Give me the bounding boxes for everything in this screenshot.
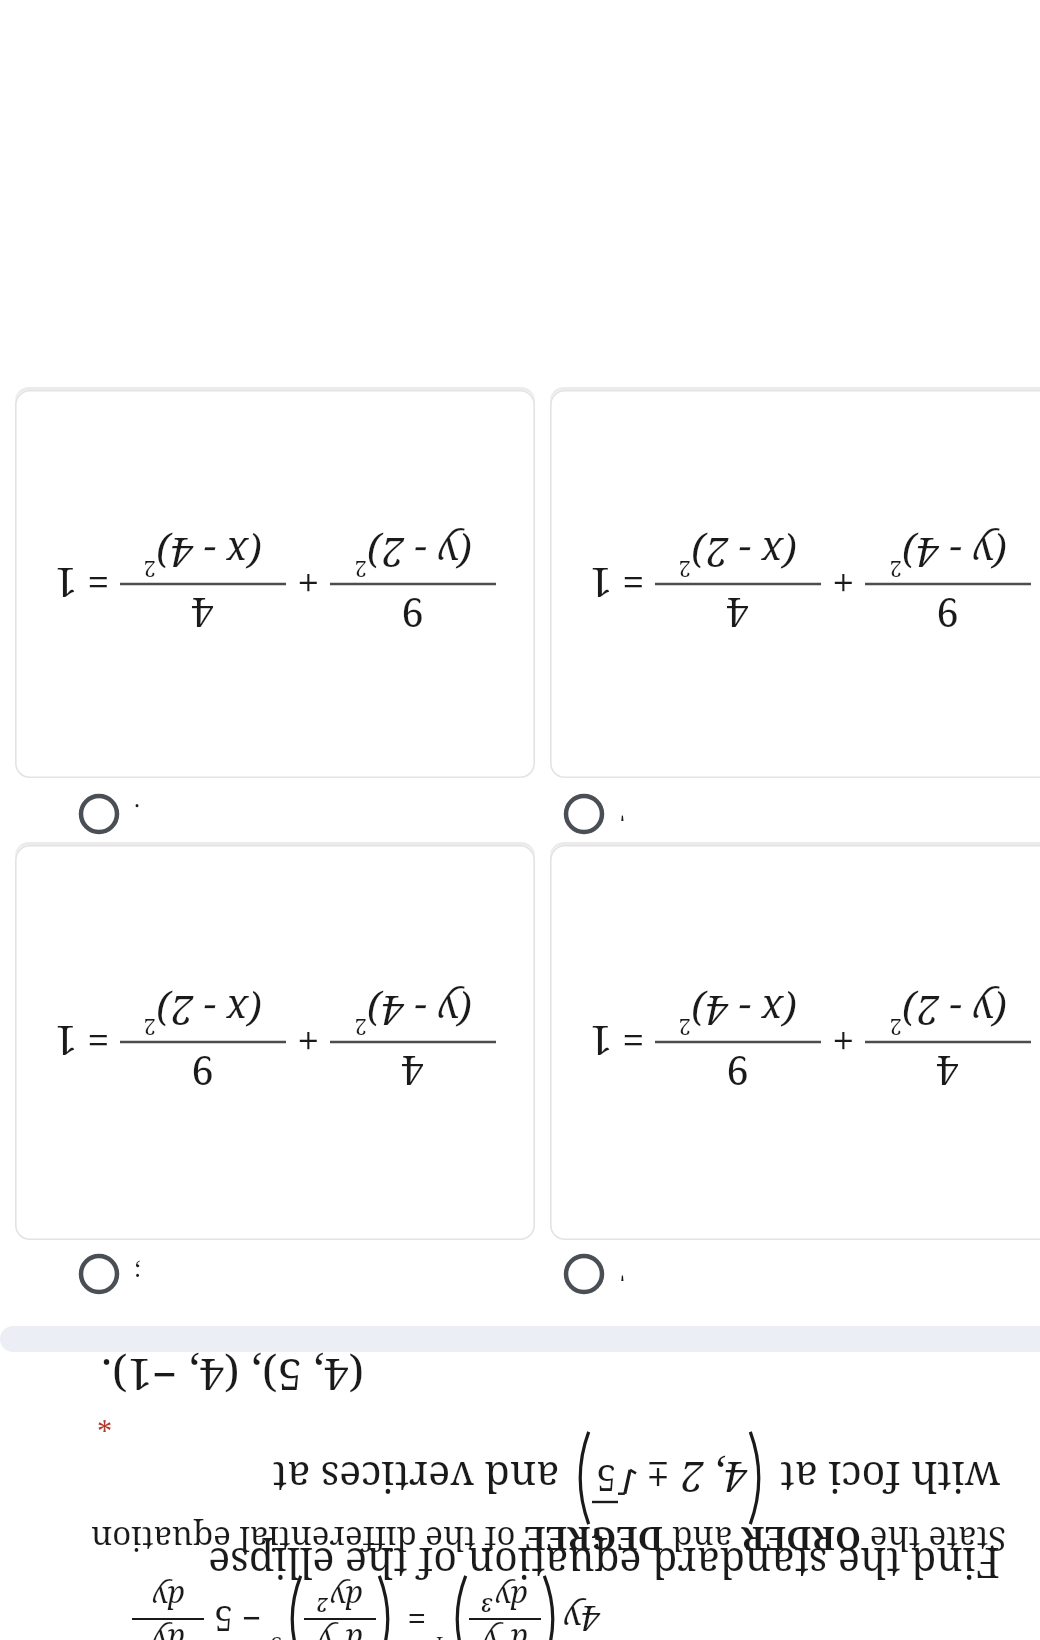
staticText: 4y xyxy=(563,1596,600,1640)
staticText: 2 xyxy=(889,555,902,585)
staticText: = xyxy=(398,1596,435,1640)
staticText: 9 xyxy=(936,587,959,641)
staticText: 2 xyxy=(354,555,367,585)
staticText: . xyxy=(134,797,140,830)
staticText: + xyxy=(286,557,330,611)
staticText: ; xyxy=(134,1257,141,1290)
staticText: 4 xyxy=(936,1045,959,1099)
staticText: 2 xyxy=(678,555,691,585)
staticText: (y − 4) xyxy=(367,985,472,1039)
staticText: 4 xyxy=(726,587,749,641)
button[interactable]: Select Option A xyxy=(563,784,639,844)
staticText: dy xyxy=(151,1620,185,1640)
staticText: d²y xyxy=(317,1620,363,1640)
staticText: ' xyxy=(619,797,625,830)
staticText: d³y xyxy=(482,1620,528,1640)
staticText: dy xyxy=(151,1577,185,1618)
button[interactable]: Select Option D xyxy=(78,1244,154,1304)
staticText: (x − 2) xyxy=(156,985,262,1039)
staticText: = 1 xyxy=(589,557,655,611)
staticText: 4 xyxy=(401,1045,424,1099)
staticText: = 1 xyxy=(54,1015,120,1069)
staticText: = 1 xyxy=(54,557,120,611)
staticText: * xyxy=(97,1399,112,1440)
button[interactable]: Select Option C xyxy=(563,1244,639,1304)
staticText: (y − 2) xyxy=(902,985,1007,1039)
staticText: (x − 2) xyxy=(691,527,797,581)
button[interactable]: 4 xyxy=(15,845,535,1240)
staticText: + xyxy=(286,1015,330,1069)
staticText: Find the standard equation of the ellips… xyxy=(208,1536,1000,1592)
staticText: 9 xyxy=(191,1045,214,1099)
staticText: ' xyxy=(619,1257,625,1290)
button[interactable]: Select Option B xyxy=(78,784,154,844)
staticText: 2 xyxy=(143,555,156,585)
staticText: 4 xyxy=(191,587,214,641)
staticText: with foci at xyxy=(769,1450,1000,1506)
staticText: (x − 4) xyxy=(156,527,262,581)
staticText: of the differential equation xyxy=(90,1517,524,1562)
staticText: (y − 2) xyxy=(367,527,472,581)
staticText: ORDER xyxy=(741,1517,861,1562)
staticText: 2 xyxy=(143,1013,156,1043)
staticText: and vertices at xyxy=(272,1450,570,1506)
staticText: 2 xyxy=(354,1013,367,1043)
staticText: + xyxy=(821,557,865,611)
staticText: dy² xyxy=(317,1577,363,1618)
staticText: State the xyxy=(861,1517,1006,1562)
button[interactable]: 9 xyxy=(15,390,535,778)
button[interactable]: 4 xyxy=(550,845,1040,1240)
staticText: 9 xyxy=(726,1045,749,1099)
staticText: 9 xyxy=(401,587,424,641)
staticText: (y − 4) xyxy=(902,527,1007,581)
staticText: 2 xyxy=(889,1013,902,1043)
staticText: (4, 5), (4, −1). xyxy=(100,1346,364,1406)
staticText: 3 xyxy=(270,1631,282,1640)
staticText: dy³ xyxy=(482,1577,528,1618)
staticText: and xyxy=(663,1517,741,1562)
staticText: + xyxy=(821,1015,865,1069)
staticText: 4 xyxy=(435,1631,447,1640)
staticText: − 5 xyxy=(204,1596,270,1640)
staticText: 4, 2 ± xyxy=(636,1450,747,1506)
button[interactable]: 9 xyxy=(550,390,1040,778)
staticText: (x − 4) xyxy=(691,985,797,1039)
staticText: DEGREE xyxy=(524,1517,663,1562)
staticText: 5 xyxy=(595,1454,616,1503)
staticText: 2 xyxy=(678,1013,691,1043)
staticText: = 1 xyxy=(589,1015,655,1069)
